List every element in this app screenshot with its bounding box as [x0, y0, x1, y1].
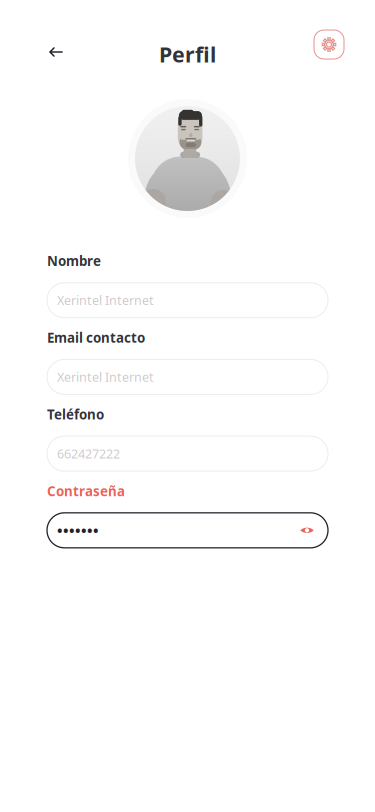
button[interactable]: Settings	[314, 30, 344, 59]
staticText: Xerintel Internet	[57, 292, 154, 309]
staticText: Perfil	[159, 40, 216, 68]
staticText: Email contacto	[47, 329, 145, 346]
staticText: Nombre	[47, 252, 101, 270]
staticText: Teléfono	[47, 405, 104, 423]
staticText: Xerintel Internet	[57, 368, 154, 385]
staticText: Contraseña	[47, 482, 125, 500]
staticText: •••••••	[57, 521, 99, 540]
button[interactable]: Back	[39, 35, 73, 69]
button[interactable]: Show password	[297, 520, 317, 540]
staticText: 662427222	[57, 445, 120, 462]
